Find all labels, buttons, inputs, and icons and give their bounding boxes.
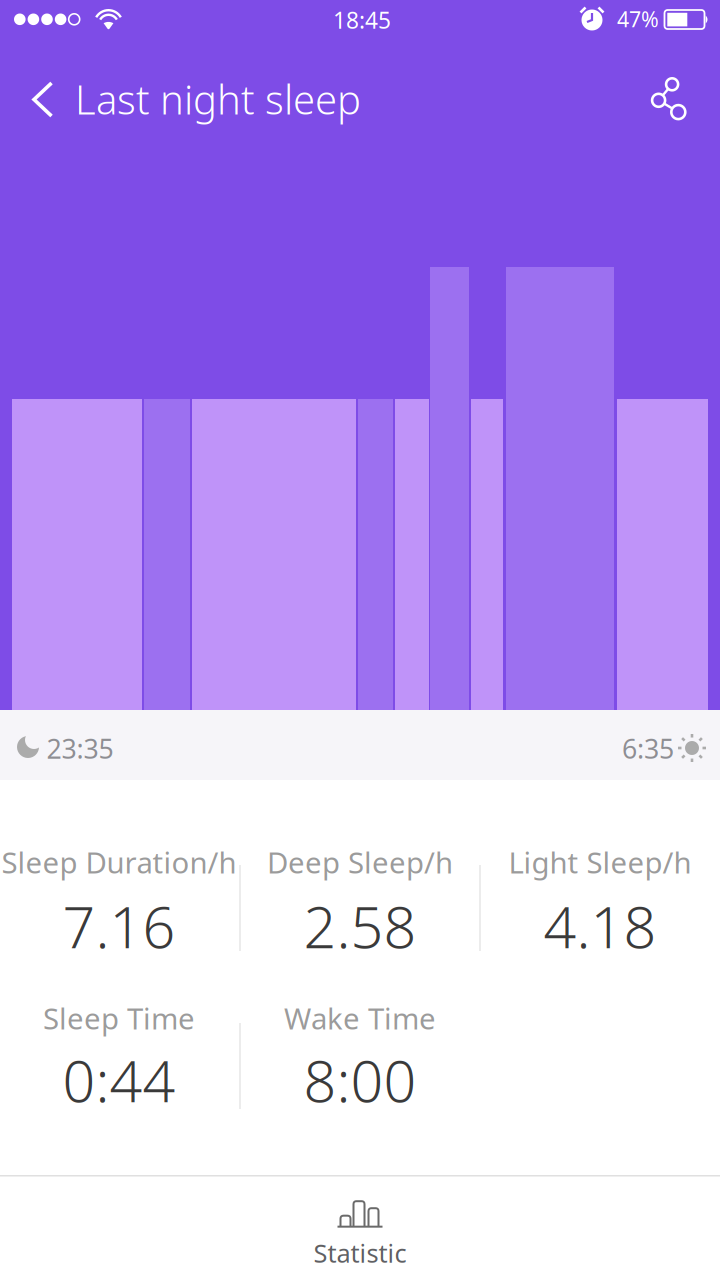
staticText: 47% (617, 5, 659, 33)
staticText: Deep Sleep/h (267, 842, 453, 881)
staticText: 2.58 (303, 888, 416, 964)
staticText: Statistic (313, 1236, 406, 1270)
button[interactable]: Back (32, 81, 54, 117)
button[interactable]: Statistic (280, 1188, 440, 1278)
staticText: 23:35 (46, 731, 113, 766)
staticText: 18:45 (333, 5, 391, 35)
staticText: 6:35 (622, 731, 674, 766)
staticText: Sleep Duration/h (1, 842, 236, 881)
staticText: 0:44 (62, 1042, 175, 1118)
staticText: 4.18 (543, 888, 656, 964)
staticText: Last night sleep (75, 72, 361, 125)
staticText: 7.16 (62, 888, 175, 964)
staticText: Sleep Time (43, 998, 195, 1037)
staticText: 8:00 (303, 1042, 416, 1118)
staticText: Light Sleep/h (508, 842, 691, 881)
button[interactable]: Share (646, 75, 690, 121)
staticText: Wake Time (284, 998, 436, 1037)
